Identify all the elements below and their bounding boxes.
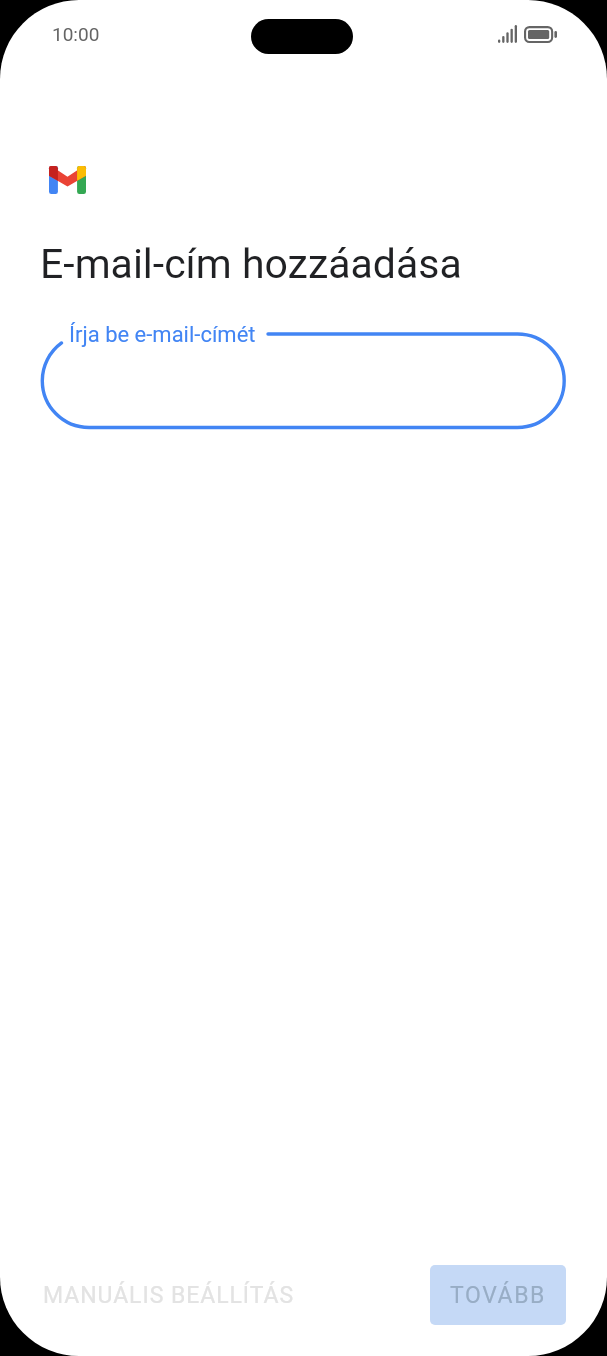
other: Battery	[524, 26, 557, 43]
button[interactable]: MANUÁLIS BEÁLLÍTÁS	[28, 1269, 310, 1321]
staticText: E-mail-cím hozzáadása	[40, 240, 462, 288]
other: Signal strength	[498, 25, 517, 43]
staticText: Írja be e-mail-címét	[69, 322, 256, 348]
staticText: TOVÁBB	[450, 1282, 547, 1309]
staticText: MANUÁLIS BEÁLLÍTÁS	[43, 1282, 295, 1309]
button[interactable]: TOVÁBB	[430, 1265, 566, 1325]
staticText: 10:00	[52, 23, 100, 45]
button[interactable]: Írja be e-mail-címét	[36, 314, 571, 438]
